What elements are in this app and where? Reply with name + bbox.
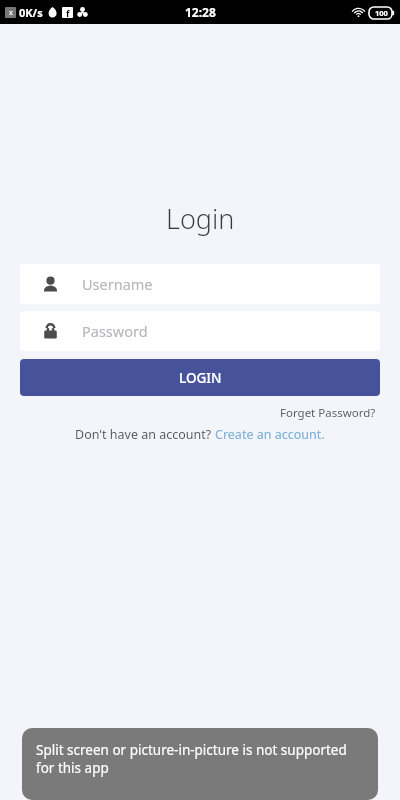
staticText: LOGIN [179, 369, 222, 387]
staticText: Split screen or picture-in-picture is no… [36, 741, 366, 777]
button[interactable]: Password [20, 311, 380, 351]
staticText: Password [82, 321, 148, 341]
staticText: Don't have an account? [75, 426, 215, 443]
button[interactable]: Forget Password? [278, 403, 378, 423]
staticText: Forget Password? [280, 405, 376, 421]
staticText: 0K/s [19, 5, 43, 20]
staticText: 100 [375, 8, 388, 18]
staticText: Username [82, 274, 153, 294]
staticText: 12:28 [185, 4, 216, 20]
button[interactable]: LOGIN [20, 359, 380, 396]
staticText: Create an account. [215, 426, 325, 443]
staticText: Login [166, 200, 235, 237]
staticText: x [9, 8, 13, 18]
button[interactable]: Create an account. [215, 426, 325, 443]
button[interactable]: Username [20, 264, 380, 304]
staticText: f [66, 7, 70, 18]
